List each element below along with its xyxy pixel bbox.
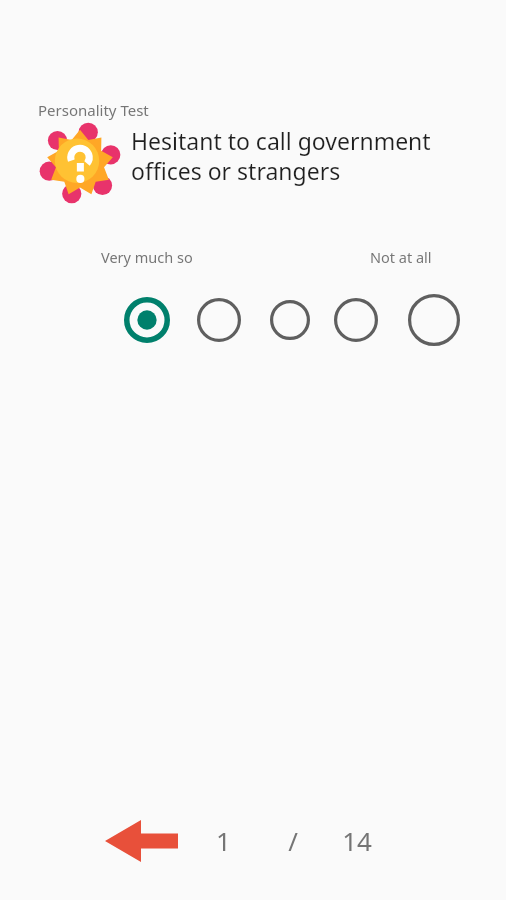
- staticText: 1: [216, 823, 231, 858]
- button[interactable]: Back: [92, 810, 190, 872]
- button[interactable]: Option 1: [115, 288, 179, 352]
- button[interactable]: Option 5: [399, 285, 469, 355]
- staticText: Hesitant to call government offices or s…: [131, 125, 483, 187]
- staticText: 14: [342, 823, 372, 858]
- staticText: Not at all: [370, 247, 432, 267]
- staticText: Very much so: [101, 247, 193, 267]
- button[interactable]: Option 4: [325, 289, 387, 351]
- staticText: Personality Test: [38, 100, 149, 120]
- staticText: /: [288, 823, 298, 858]
- button[interactable]: Option 2: [188, 289, 250, 351]
- button[interactable]: Option 3: [261, 291, 319, 349]
